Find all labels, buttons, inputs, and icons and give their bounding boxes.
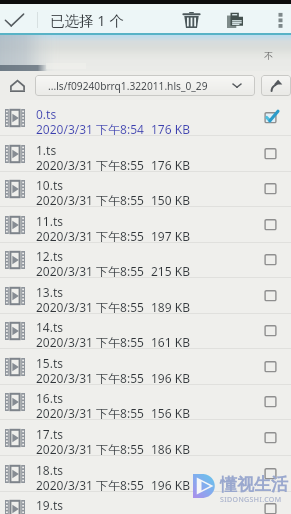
staticText: 2020/3/31 下午8:55 bbox=[36, 263, 144, 279]
staticText: 已选择 1 个 bbox=[50, 10, 124, 30]
button[interactable]: Select 13.ts bbox=[249, 278, 291, 313]
staticText: 2020/3/31 下午8:55 bbox=[36, 228, 144, 244]
staticText: 2020/3/31 下午8:54 bbox=[36, 121, 144, 137]
button[interactable]: Select 19.ts bbox=[249, 491, 291, 514]
staticText: 161 KB bbox=[151, 334, 190, 350]
button[interactable]: Select 15.ts bbox=[249, 349, 291, 384]
staticText: 2020/3/31 下午8:55 bbox=[36, 405, 144, 421]
button[interactable]: 16.ts bbox=[0, 384, 291, 419]
staticText: 196 KB bbox=[151, 477, 190, 493]
button[interactable]: Delete bbox=[175, 4, 207, 35]
staticText: 176 KB bbox=[151, 121, 190, 137]
staticText: 215 KB bbox=[151, 263, 190, 279]
staticText: 2020/3/31 下午8:55 bbox=[36, 334, 144, 350]
button[interactable]: 15.ts bbox=[0, 349, 291, 384]
staticText: 197 KB bbox=[151, 228, 190, 244]
button[interactable]: Select 12.ts bbox=[249, 242, 291, 277]
button[interactable]: Select 1.ts bbox=[249, 136, 291, 171]
staticText: 2020/3/31 下午8:55 bbox=[36, 370, 144, 386]
staticText: 186 KB bbox=[151, 441, 190, 457]
staticText: 196 KB bbox=[151, 370, 190, 386]
staticText: 12.ts bbox=[36, 248, 64, 264]
staticText: 2020/3/31 下午8:55 bbox=[36, 477, 144, 493]
staticText: 14.ts bbox=[36, 319, 64, 335]
staticText: 2020/3/31 下午8:55 bbox=[36, 192, 144, 208]
staticText: 2020/3/31 下午8:55 bbox=[36, 299, 144, 315]
staticText: 176 KB bbox=[151, 157, 190, 173]
button[interactable]: 12.ts bbox=[0, 242, 291, 277]
button[interactable]: Select 16.ts bbox=[249, 384, 291, 419]
button[interactable]: Confirm selection bbox=[0, 4, 28, 35]
button[interactable]: 10.ts bbox=[0, 171, 291, 206]
staticText: 1.ts bbox=[36, 142, 57, 158]
button[interactable]: ...ls/f09240brrq1.322011.hls_0_29 bbox=[35, 75, 255, 96]
staticText: 189 KB bbox=[151, 299, 190, 315]
staticText: 17.ts bbox=[36, 426, 64, 442]
staticText: ...ls/f09240brrq1.322011.hls_0_29 bbox=[48, 79, 231, 93]
button[interactable]: 14.ts bbox=[0, 313, 291, 348]
staticText: SIDONGSHI.COM bbox=[220, 495, 282, 505]
button[interactable]: Select 14.ts bbox=[249, 313, 291, 348]
button[interactable]: 1.ts bbox=[0, 136, 291, 171]
button[interactable]: Select 18.ts bbox=[249, 456, 291, 491]
staticText: 不 bbox=[264, 50, 273, 61]
staticText: 懂视生活 bbox=[220, 474, 288, 495]
staticText: 16.ts bbox=[36, 390, 64, 406]
staticText: 18.ts bbox=[36, 462, 64, 478]
staticText: 11.ts bbox=[36, 213, 64, 229]
button[interactable]: 19.ts bbox=[0, 491, 291, 514]
button[interactable]: Home bbox=[6, 75, 28, 97]
staticText: 156 KB bbox=[151, 405, 190, 421]
button[interactable]: Up one level bbox=[261, 75, 291, 96]
button[interactable]: 13.ts bbox=[0, 278, 291, 313]
button[interactable]: 11.ts bbox=[0, 207, 291, 242]
staticText: 2020/3/31 下午8:55 bbox=[36, 441, 144, 457]
button[interactable]: 18.ts bbox=[0, 456, 291, 491]
staticText: 10.ts bbox=[36, 177, 64, 193]
staticText: 150 KB bbox=[151, 192, 190, 208]
staticText: 0.ts bbox=[36, 106, 57, 122]
button[interactable]: Select 10.ts bbox=[249, 171, 291, 206]
staticText: 13.ts bbox=[36, 284, 64, 300]
staticText: 15.ts bbox=[36, 355, 64, 371]
staticText: 2020/3/31 下午8:55 bbox=[36, 157, 144, 173]
button[interactable]: Select 11.ts bbox=[249, 207, 291, 242]
button[interactable]: Copy bbox=[219, 4, 251, 35]
staticText: 19.ts bbox=[36, 497, 64, 513]
button[interactable]: More options bbox=[269, 4, 291, 35]
button[interactable]: Select 17.ts bbox=[249, 420, 291, 455]
button[interactable]: 0.ts bbox=[0, 100, 291, 135]
button[interactable]: Select 0.ts bbox=[249, 100, 291, 135]
button[interactable]: 17.ts bbox=[0, 420, 291, 455]
